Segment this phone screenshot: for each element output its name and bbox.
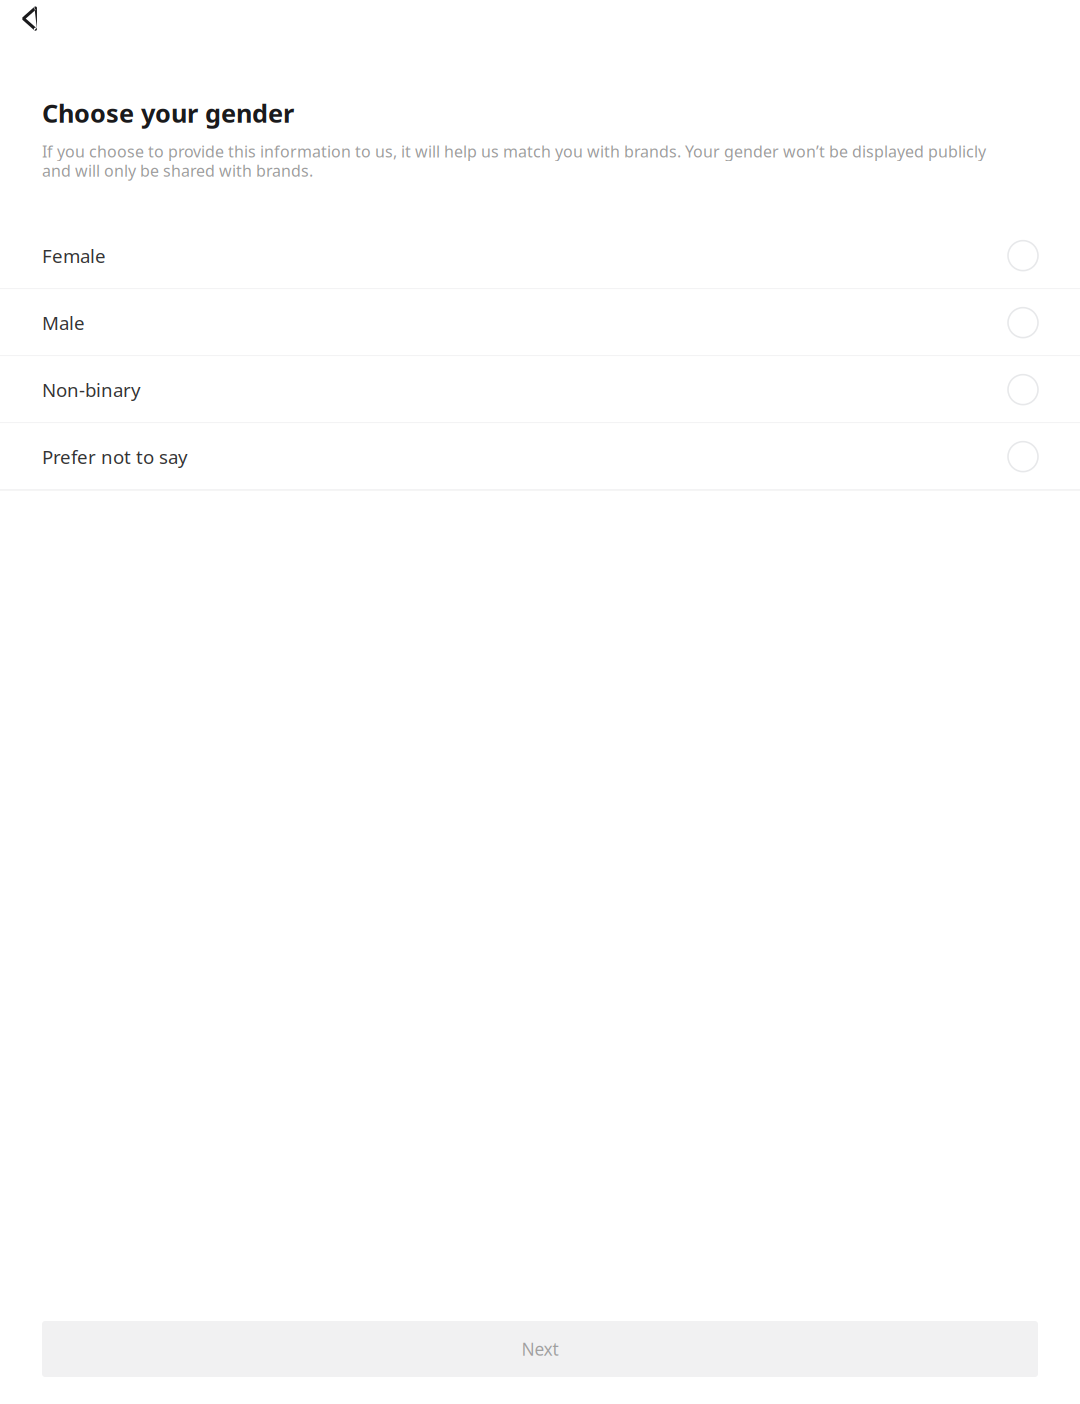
button[interactable]: Male [0, 289, 1080, 356]
button[interactable]: Next [0, 1321, 1080, 1404]
button[interactable]: Female [0, 222, 1080, 289]
staticText: If you choose to provide this informatio… [42, 141, 986, 181]
button[interactable]: Non-binary [0, 356, 1080, 423]
staticText: Prefer not to say [42, 444, 188, 469]
staticText: Female [42, 243, 106, 268]
staticText: Next [521, 1337, 558, 1360]
staticText: Choose your gender [42, 96, 294, 130]
button[interactable]: Prefer not to say [0, 423, 1080, 490]
staticText: Non-binary [42, 377, 141, 402]
button[interactable]: Back [0, 0, 72, 42]
staticText: Male [42, 310, 85, 335]
